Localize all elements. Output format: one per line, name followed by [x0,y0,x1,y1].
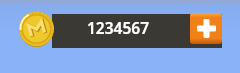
button[interactable]: Coins [19,11,54,47]
button[interactable] [52,14,222,48]
button[interactable]: Add coins [190,13,222,44]
staticText: 1234567 [87,17,150,38]
